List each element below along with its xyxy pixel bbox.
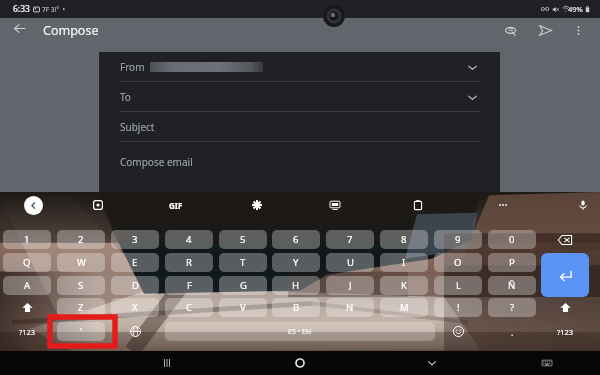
button[interactable]: K [380,276,428,295]
button[interactable]: Themes [325,195,345,215]
button[interactable]: ? [488,298,536,317]
button[interactable]: Attach file [498,18,524,42]
staticText: From [120,60,145,74]
button[interactable]: C [165,298,213,317]
button[interactable]: I [380,253,428,272]
button[interactable]: 7 [326,230,374,249]
button[interactable]: D [111,276,159,295]
button[interactable]: Language [111,322,159,341]
button[interactable]: ?123 [3,322,51,341]
button[interactable]: Backspace [541,230,589,249]
button[interactable]: P [488,253,536,272]
staticText: Ñ [508,279,516,292]
button[interactable]: Q [3,253,51,272]
button[interactable]: Subject [99,112,500,142]
button[interactable]: ' [57,322,105,341]
button[interactable]: R [165,253,213,272]
button[interactable]: X [111,298,159,317]
button[interactable]: O [434,253,482,272]
button[interactable]: G [219,276,267,295]
staticText: P [509,256,515,269]
button[interactable]: Shift [3,298,51,317]
button[interactable]: 5 [219,230,267,249]
button[interactable]: U [326,253,374,272]
button[interactable]: Stickers [88,195,108,215]
staticText: Z [78,301,84,314]
staticText: GIF [169,200,183,211]
button[interactable]: More options [493,195,513,215]
button[interactable]: ES • EN [165,322,435,341]
button[interactable]: Ñ [488,276,536,295]
button[interactable]: H [272,276,320,295]
button[interactable]: 1 [3,230,51,249]
button[interactable]: F [165,276,213,295]
button[interactable]: 2 [57,230,105,249]
button[interactable]: S [57,276,105,295]
button[interactable]: E [111,253,159,272]
button[interactable]: Enter [541,253,589,297]
button[interactable]: Switch keyboard [535,351,559,375]
button[interactable]: 8 [380,230,428,249]
staticText: O [454,256,462,269]
button[interactable]: M [380,298,428,317]
button[interactable]: T [219,253,267,272]
button[interactable]: Recents [155,351,179,375]
button[interactable]: W [57,253,105,272]
staticText: ' [80,325,83,338]
button[interactable]: Home [288,351,312,375]
staticText: A [24,279,31,292]
staticText: I [402,256,406,269]
staticText: ?123 [557,327,574,337]
staticText: T [240,256,246,269]
staticText: C [186,301,193,314]
staticText: Subject [120,120,155,134]
button[interactable]: N [326,298,374,317]
button[interactable]: . [488,322,536,341]
staticText: 1 [24,233,30,246]
button[interactable]: Z [57,298,105,317]
button[interactable]: V [219,298,267,317]
button[interactable]: 0 [488,230,536,249]
staticText: G [240,279,247,292]
staticText: ? [510,301,515,314]
button[interactable]: Y [272,253,320,272]
button[interactable]: Shift [541,298,589,317]
button[interactable]: Settings [247,195,267,215]
button[interactable]: Emoji [434,322,482,341]
staticText: ?123 [19,327,36,337]
button[interactable]: 4 [165,230,213,249]
button[interactable]: Voice input [573,195,593,215]
button[interactable]: ?123 [541,322,589,341]
staticText: W [77,256,86,269]
button[interactable]: To [99,82,500,112]
staticText: S [78,279,84,292]
staticText: Compose email [120,155,193,169]
staticText: Y [293,256,299,269]
button[interactable]: Clipboard [408,195,428,215]
button[interactable]: Back [24,196,43,215]
staticText: 4 [186,233,192,246]
button[interactable]: A [3,276,51,295]
button[interactable]: J [326,276,374,295]
button[interactable]: 3 [111,230,159,249]
staticText: Q [23,256,31,269]
button[interactable]: Back [5,16,33,40]
button[interactable]: From [99,52,500,82]
button[interactable]: 9 [434,230,482,249]
button[interactable]: Send [532,18,558,42]
staticText: E [132,256,138,269]
staticText: 49% [564,4,583,14]
button[interactable]: ! [434,298,482,317]
button[interactable]: Hide keyboard [420,351,444,375]
staticText: 9 [455,233,461,246]
staticText: J [349,279,352,292]
button[interactable]: 6 [272,230,320,249]
staticText: F [187,279,192,292]
button[interactable]: More options [565,18,591,42]
staticText: L [456,279,461,292]
button[interactable]: B [272,298,320,317]
button[interactable]: L [434,276,482,295]
staticText: H [292,279,300,292]
staticText: 6 [293,233,299,246]
staticText: 7 [347,233,353,246]
